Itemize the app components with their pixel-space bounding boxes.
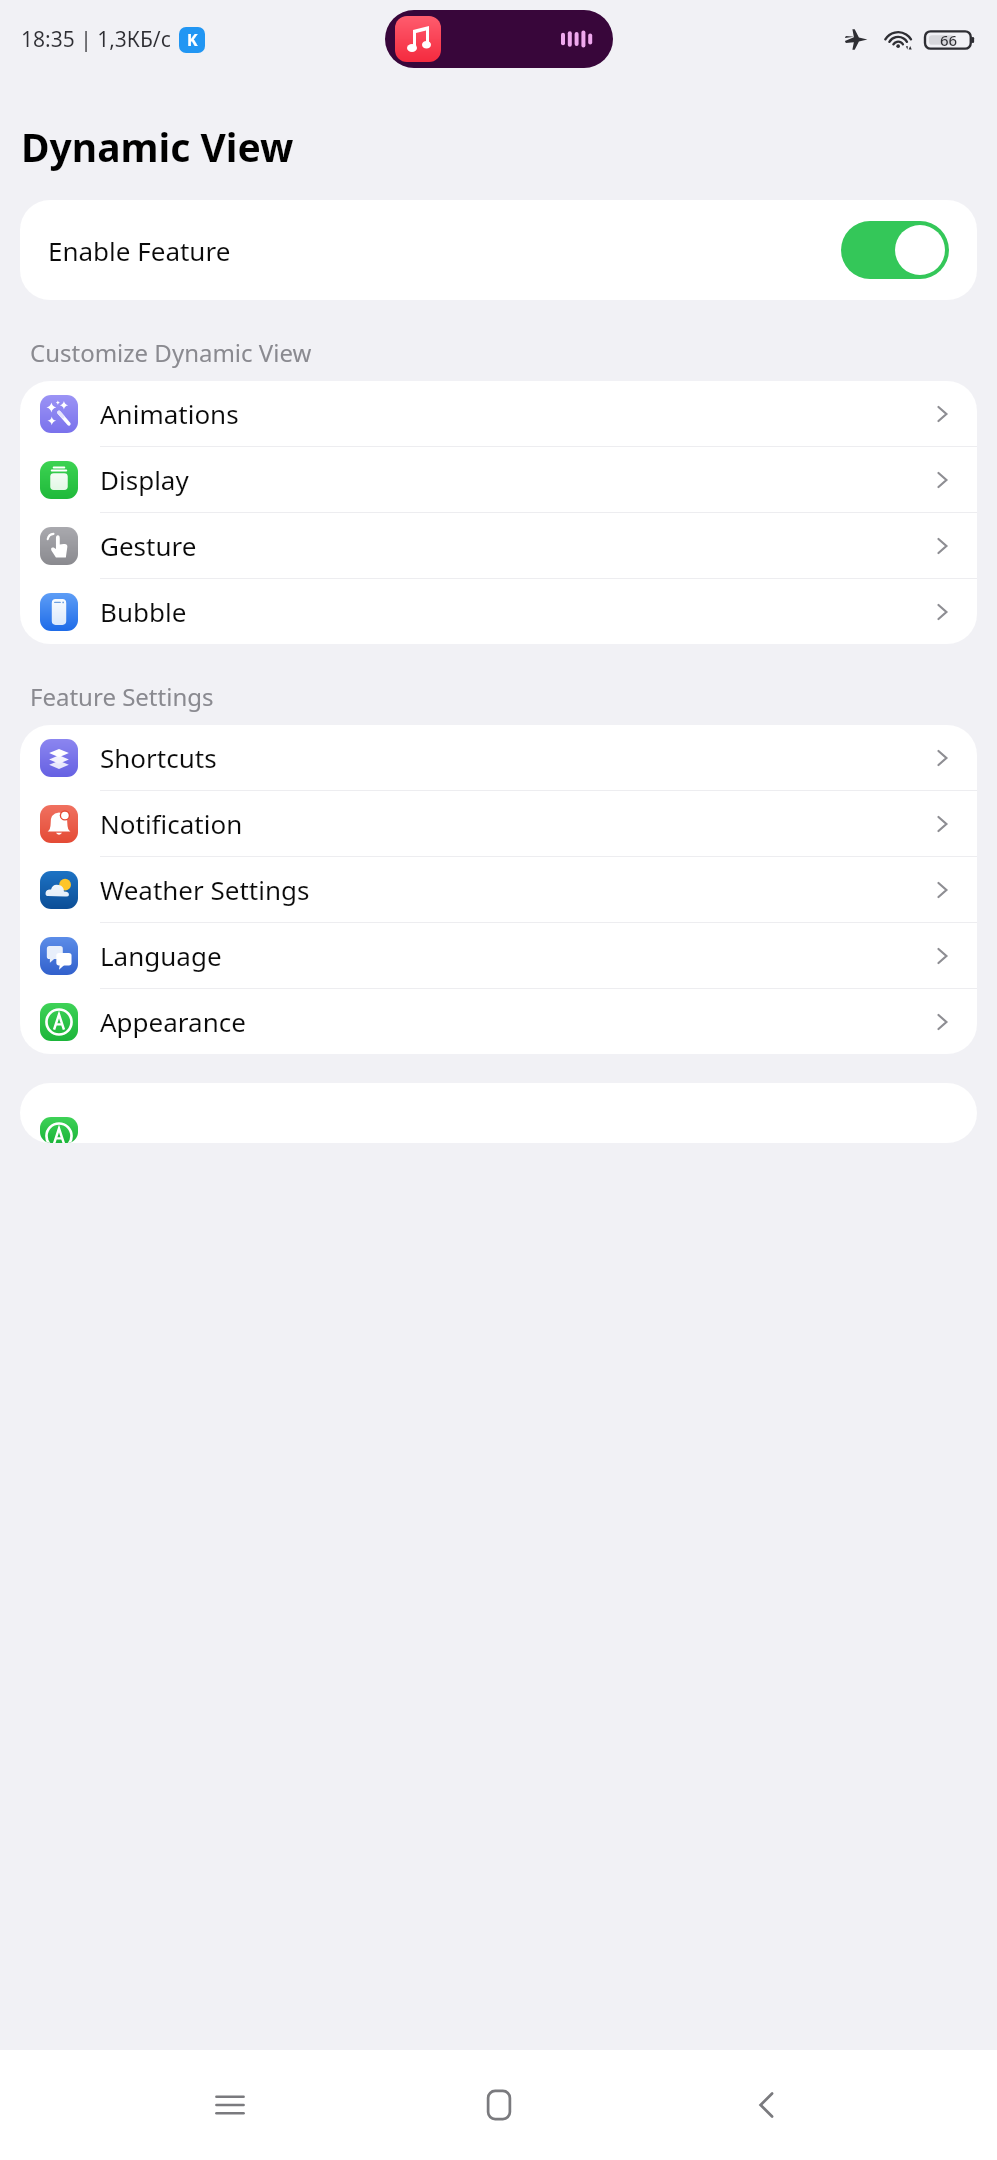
button[interactable]: Recent apps [191, 2066, 269, 2144]
staticText: Customize Dynamic View [30, 336, 312, 369]
staticText: K [187, 29, 198, 51]
button[interactable]: Home [460, 2066, 538, 2144]
button[interactable]: Animations [20, 381, 977, 446]
button[interactable]: Appearance [20, 989, 977, 1054]
staticText: 66 [940, 30, 958, 50]
staticText: Feature Settings [30, 680, 214, 713]
button[interactable]: Notification [20, 791, 977, 856]
button[interactable]: Enable Feature [20, 200, 977, 300]
staticText: Bubble [100, 594, 931, 629]
staticText: 18:35 | 1,3КБ/c [21, 25, 171, 54]
staticText: Animations [100, 396, 931, 431]
staticText: Notification [100, 806, 931, 841]
button[interactable]: Weather Settings [20, 857, 977, 922]
button[interactable]: Back [728, 2066, 806, 2144]
button[interactable]: Shortcuts [20, 725, 977, 790]
staticText: Display [100, 462, 931, 497]
staticText: Appearance [100, 1004, 931, 1039]
staticText: Shortcuts [100, 740, 931, 775]
button[interactable]: Language [20, 923, 977, 988]
button[interactable] [20, 1083, 977, 1143]
staticText: Weather Settings [100, 872, 931, 907]
staticText: Language [100, 938, 931, 973]
button[interactable]: Display [20, 447, 977, 512]
staticText: Dynamic View [21, 120, 294, 173]
staticText: Gesture [100, 528, 931, 563]
button[interactable]: Gesture [20, 513, 977, 578]
staticText: Enable Feature [48, 233, 841, 268]
button[interactable]: Bubble [20, 579, 977, 644]
